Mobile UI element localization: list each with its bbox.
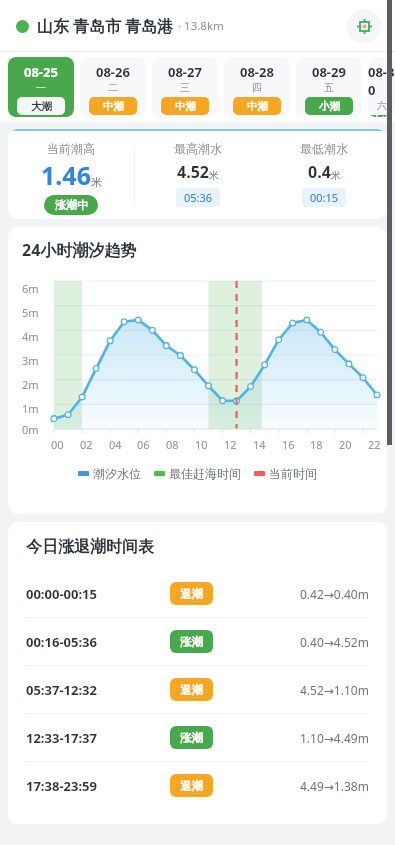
staticText: 6m [22, 281, 39, 296]
staticText: 二 [108, 81, 118, 94]
staticText: 当前潮高 [47, 141, 95, 156]
staticText: 中潮 [247, 100, 268, 113]
staticText: 小潮 [319, 100, 340, 113]
staticText: 米 [91, 175, 102, 189]
button[interactable]: Locate [347, 9, 381, 43]
staticText: 4m [22, 329, 39, 344]
staticText: 大潮 [31, 100, 52, 113]
staticText: 中潮 [175, 100, 196, 113]
staticText: 退潮 [180, 587, 203, 601]
button[interactable]: 08-30 [368, 57, 395, 117]
staticText: 16 [282, 437, 295, 452]
button[interactable]: 08-28 [224, 57, 290, 117]
staticText: 05:37-12:32 [26, 681, 97, 699]
staticText: 12:33-17:37 [26, 729, 97, 747]
button[interactable]: 05:37-12:32 [8, 666, 387, 713]
staticText: 潮汐水位 [93, 466, 141, 481]
staticText: 22 [368, 437, 381, 452]
staticText: 中潮 [103, 100, 124, 113]
staticText: 最高潮水 [174, 141, 222, 156]
button[interactable]: 00:16-05:36 [8, 618, 387, 665]
staticText: 米 [331, 169, 341, 182]
staticText: 五 [324, 81, 334, 94]
staticText: 06 [137, 437, 150, 452]
staticText: 米 [209, 169, 219, 182]
staticText: 18 [310, 437, 323, 452]
staticText: 4.52→1.10m [300, 682, 369, 698]
staticText: 0.4 [308, 161, 331, 183]
staticText: · 13.8km [178, 18, 224, 34]
staticText: 1m [22, 401, 39, 416]
button[interactable]: 00:00-00:15 [8, 570, 387, 617]
staticText: 最佳赶海时间 [169, 466, 241, 481]
staticText: 00:00-00:15 [26, 585, 97, 603]
staticText: 14 [253, 437, 266, 452]
staticText: 1.46 [41, 158, 91, 192]
staticText: 00 [51, 437, 64, 452]
staticText: 12 [224, 437, 237, 452]
staticText: 10 [195, 437, 208, 452]
staticText: 涨潮 [180, 635, 203, 649]
staticText: 0m [22, 422, 39, 437]
staticText: 4.52 [177, 161, 209, 183]
button[interactable]: 08-26 [80, 57, 146, 117]
staticText: 24小时潮汐趋势 [22, 239, 137, 261]
staticText: 1.10→4.49m [300, 730, 369, 746]
staticText: 00:16-05:36 [26, 633, 97, 651]
staticText: 04 [109, 437, 122, 452]
button[interactable]: 08-27 [152, 57, 218, 117]
staticText: 0.42→0.40m [300, 586, 369, 602]
staticText: 一 [36, 81, 46, 94]
staticText: 08-28 [240, 63, 274, 81]
staticText: 5m [22, 305, 39, 320]
staticText: 退潮 [180, 683, 203, 697]
staticText: 05:36 [184, 190, 213, 205]
staticText: 小潮 [371, 115, 392, 117]
staticText: 08-30 [368, 63, 395, 99]
staticText: 08 [166, 437, 179, 452]
button[interactable]: 08-29 [296, 57, 362, 117]
staticText: 3m [22, 353, 39, 368]
staticText: 08-27 [168, 63, 202, 81]
staticText: 最低潮水 [300, 141, 348, 156]
staticText: 四 [252, 81, 262, 94]
staticText: 08-26 [96, 63, 130, 81]
staticText: 4.49→1.38m [300, 778, 369, 794]
staticText: 2m [22, 377, 39, 392]
staticText: 20 [339, 437, 352, 452]
staticText: 08-25 [24, 63, 58, 81]
staticText: 涨潮中 [55, 198, 88, 212]
staticText: 山东 青岛市 青岛港 [37, 15, 174, 37]
staticText: 02 [80, 437, 93, 452]
staticText: 涨潮 [180, 731, 203, 745]
staticText: 三 [180, 81, 190, 94]
staticText: 当前时间 [269, 466, 317, 481]
button[interactable]: 08-25 [8, 57, 74, 117]
staticText: 退潮 [180, 779, 203, 793]
staticText: 00:15 [310, 190, 339, 205]
staticText: 六 [377, 99, 387, 112]
button[interactable]: 12:33-17:37 [8, 714, 387, 761]
staticText: 08-29 [312, 63, 346, 81]
staticText: 今日涨退潮时间表 [26, 537, 154, 557]
staticText: 17:38-23:59 [26, 777, 97, 795]
staticText: 0.40→4.52m [300, 634, 369, 650]
button[interactable]: 17:38-23:59 [8, 762, 387, 809]
